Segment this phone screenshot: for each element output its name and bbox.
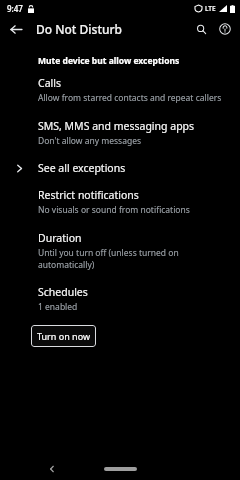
button[interactable]: Schedules [0,285,240,313]
staticText: No visuals or sound from notifications [38,204,190,216]
staticText: See all exceptions [38,161,126,175]
button[interactable]: Restrict notifications [0,188,240,216]
staticText: Until you turn off (unless turned on aut… [38,247,230,271]
staticText: Restrict notifications [38,188,139,202]
staticText: 9:47 [7,3,23,14]
button[interactable]: Duration [0,231,240,271]
button[interactable]: Search [191,19,211,39]
button[interactable]: Calls [0,76,240,104]
staticText: Mute device but allow exceptions [38,55,226,67]
button[interactable]: Back [6,19,26,39]
staticText: Don't allow any messages [38,135,142,147]
staticText: Turn on now [37,330,90,342]
staticText: Do Not Disturb [36,21,123,37]
staticText: 1 enabled [38,301,78,313]
staticText: Allow from starred contacts and repeat c… [38,92,222,104]
button[interactable]: SMS, MMS and messaging apps [0,119,240,147]
staticText: Schedules [38,285,88,299]
button[interactable]: Back [44,461,60,477]
button[interactable]: Home [104,467,137,471]
staticText: LTE [205,4,216,13]
button[interactable]: See all exceptions [0,161,240,175]
staticText: SMS, MMS and messaging apps [38,119,195,133]
button[interactable]: Help [215,19,235,39]
staticText: Calls [38,76,61,90]
staticText: Duration [38,231,82,245]
button[interactable]: Turn on now [31,325,96,347]
